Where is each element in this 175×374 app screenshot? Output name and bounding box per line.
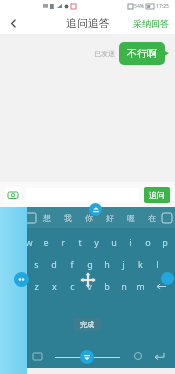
button[interactable]: f — [63, 253, 81, 275]
button[interactable]: Backspace — [149, 275, 173, 297]
button[interactable]: m — [132, 275, 149, 297]
button[interactable]: t — [71, 231, 88, 253]
staticText: ?123 — [8, 351, 24, 361]
button[interactable]: g — [81, 253, 98, 275]
staticText: 完成 — [80, 320, 94, 329]
button[interactable]: Enter — [147, 344, 172, 368]
staticText: t — [78, 236, 82, 248]
staticText: i — [129, 236, 132, 248]
staticText: 采纳回答 — [133, 18, 169, 29]
button[interactable]: 你 — [78, 207, 99, 228]
button[interactable]: i — [122, 231, 139, 253]
staticText: u — [111, 236, 117, 248]
button[interactable]: 完成 — [80, 320, 94, 329]
staticText: 你 — [85, 213, 93, 223]
button[interactable]: s — [27, 253, 45, 275]
staticText: y — [94, 236, 99, 248]
staticText: n — [121, 280, 127, 292]
staticText: l — [156, 258, 159, 270]
staticText: 好 — [106, 213, 114, 223]
button[interactable]: ?123 — [3, 344, 28, 368]
staticText: c — [70, 280, 75, 292]
button[interactable]: r — [54, 231, 71, 253]
staticText: r — [61, 236, 65, 248]
staticText: h — [104, 258, 110, 270]
button[interactable]: b — [98, 275, 115, 297]
other: Move — [80, 272, 96, 288]
button[interactable]: More — [162, 213, 172, 223]
button[interactable]: Back — [0, 12, 26, 34]
button[interactable]: j — [115, 253, 132, 275]
button[interactable]: 在 — [141, 207, 162, 228]
staticText: z — [34, 280, 39, 292]
staticText: g — [87, 258, 93, 270]
other: Selection handle left — [14, 272, 29, 287]
button[interactable]: 不行啊 — [127, 47, 157, 60]
button[interactable]: v — [81, 275, 98, 297]
button[interactable]: Input method — [28, 344, 47, 368]
staticText: 17:25 — [156, 3, 169, 10]
staticText: 想 — [43, 213, 51, 223]
button[interactable]: 喔 — [120, 207, 141, 228]
button[interactable]: u — [105, 231, 122, 253]
staticText: b — [104, 280, 110, 292]
button[interactable]: Camera — [5, 187, 21, 203]
button[interactable]: h — [98, 253, 115, 275]
staticText: 54% — [134, 3, 144, 10]
button[interactable]: y — [88, 231, 105, 253]
staticText: 已发送 — [94, 49, 115, 58]
button[interactable]: a — [9, 253, 27, 275]
other: Selection handle right — [161, 272, 174, 285]
staticText: v — [87, 280, 92, 292]
other: Selection handle top — [89, 203, 102, 216]
button[interactable]: w — [20, 231, 37, 253]
staticText: p — [162, 236, 168, 248]
staticText: w — [25, 236, 33, 248]
staticText: 追问追答 — [66, 16, 110, 30]
staticText: j — [122, 258, 125, 270]
button[interactable]: c — [63, 275, 81, 297]
staticText: 不行啊 — [127, 47, 157, 60]
staticText: 喔 — [127, 213, 135, 223]
button[interactable]: 追问 — [144, 187, 170, 203]
other: Selection handle bottom — [80, 350, 94, 364]
staticText: 我 — [64, 213, 72, 223]
button[interactable]: Emoji — [128, 344, 147, 368]
button[interactable]: e — [37, 231, 54, 253]
staticText: s — [34, 258, 39, 270]
button[interactable]: 想 — [36, 207, 57, 228]
staticText: m — [136, 280, 145, 292]
staticText: 追问 — [149, 190, 165, 200]
button[interactable]: z — [27, 275, 45, 297]
staticText: o — [145, 236, 151, 248]
button[interactable]: p — [156, 231, 173, 253]
button[interactable]: Emoji — [26, 213, 36, 223]
button[interactable]: 采纳回答 — [133, 12, 169, 34]
staticText: d — [51, 258, 57, 270]
staticText: k — [138, 258, 143, 270]
staticText: 在 — [148, 213, 156, 223]
button[interactable]: Shift — [2, 275, 27, 297]
button[interactable]: n — [115, 275, 132, 297]
staticText: e — [43, 236, 49, 248]
button[interactable]: k — [132, 253, 149, 275]
button[interactable]: o — [139, 231, 156, 253]
staticText: x — [52, 280, 57, 292]
button[interactable]: Space — [47, 344, 128, 368]
staticText: f — [70, 258, 74, 270]
button[interactable]: 好 — [99, 207, 120, 228]
button[interactable]: 我 — [57, 207, 78, 228]
button[interactable]: d — [45, 253, 63, 275]
button[interactable]: x — [45, 275, 63, 297]
button[interactable]: q — [2, 231, 20, 253]
button[interactable]: l — [149, 253, 166, 275]
